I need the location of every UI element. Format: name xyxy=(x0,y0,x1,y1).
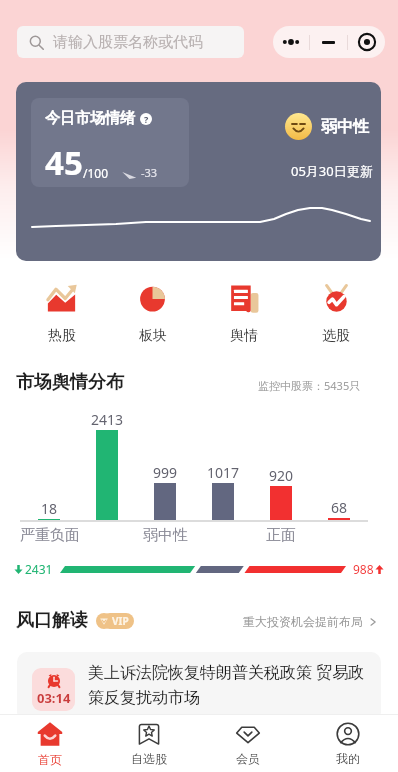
button[interactable]: 自选股 xyxy=(99,715,198,772)
staticText: 板块 xyxy=(139,327,167,345)
staticText: 风口解读 xyxy=(16,609,88,632)
staticText: 美上诉法院恢复特朗普关税政策 贸易政策反复扰动市场 xyxy=(88,661,366,707)
button[interactable]: 舆情 xyxy=(198,278,290,350)
button[interactable]: 今日市场情绪 xyxy=(16,82,381,261)
staticText: 严重负面 xyxy=(20,526,78,545)
staticText: 我的 xyxy=(336,751,360,766)
staticText: 会员 xyxy=(236,751,260,766)
staticText: ? xyxy=(144,113,149,125)
staticText: 弱中性 xyxy=(143,526,188,545)
staticText: 市场舆情分布 xyxy=(16,371,124,394)
staticText: 920 xyxy=(269,466,294,485)
staticText: 1017 xyxy=(207,463,240,482)
button[interactable]: 首页 xyxy=(0,715,99,772)
staticText: VIP xyxy=(112,614,129,628)
staticText: 今日市场情绪 xyxy=(45,109,135,128)
staticText: 05月30日更新 xyxy=(291,162,373,180)
staticText: 弱中性 xyxy=(321,117,369,137)
staticText: -33 xyxy=(141,165,158,180)
staticText: 首页 xyxy=(38,752,62,767)
staticText: 自选股 xyxy=(131,751,167,766)
staticText: 热股 xyxy=(48,327,76,345)
staticText: 999 xyxy=(153,463,178,482)
button[interactable]: 我的 xyxy=(298,715,398,772)
staticText: 2431 xyxy=(25,561,53,577)
button[interactable]: Minimize xyxy=(310,26,347,58)
button[interactable]: 03:14 xyxy=(17,652,381,722)
staticText: 请输入股票名称或代码 xyxy=(53,33,203,52)
button[interactable]: 选股 xyxy=(290,278,382,350)
staticText: 03:14 xyxy=(37,689,71,707)
staticText: 选股 xyxy=(322,327,350,345)
staticText: 2413 xyxy=(91,410,124,429)
button[interactable]: More xyxy=(273,26,309,58)
button[interactable]: Close xyxy=(348,26,385,58)
button[interactable]: 请输入股票名称或代码 xyxy=(17,26,244,58)
button[interactable]: 会员 xyxy=(198,715,298,772)
staticText: 988 xyxy=(353,561,374,577)
staticText: 68 xyxy=(331,498,348,517)
staticText: 45 xyxy=(45,140,83,185)
staticText: 监控中股票：5435只 xyxy=(258,378,361,393)
staticText: 重大投资机会提前布局 xyxy=(243,614,363,629)
staticText: 舆情 xyxy=(230,327,258,345)
button[interactable]: 板块 xyxy=(107,278,198,350)
staticText: 18 xyxy=(41,499,58,518)
staticText: 正面 xyxy=(266,526,296,545)
staticText: /100 xyxy=(83,165,109,181)
button[interactable]: 热股 xyxy=(16,278,107,350)
button[interactable]: 重大投资机会提前布局 xyxy=(243,614,378,629)
